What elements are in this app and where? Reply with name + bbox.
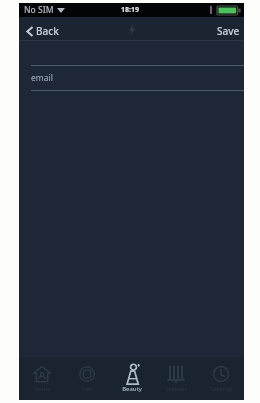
staticText: Save (217, 24, 240, 38)
button[interactable]: email (19, 66, 244, 90)
staticText: email (31, 72, 53, 84)
button[interactable]: Beauty (110, 361, 154, 397)
staticText: Back (36, 24, 59, 38)
staticText: Beauty (122, 385, 142, 393)
staticText: Statistic (165, 385, 188, 393)
button[interactable]: Back (19, 20, 67, 42)
button[interactable]: Statistic (154, 360, 198, 397)
staticText: Home (33, 385, 51, 393)
button[interactable]: Info (65, 360, 109, 397)
button[interactable]: Home (20, 360, 64, 397)
staticText: Settings (210, 385, 233, 393)
button[interactable]: Settings (199, 360, 243, 397)
staticText: No SIM (24, 4, 54, 16)
staticText: Info (81, 385, 93, 393)
staticText: 18:19 (121, 5, 139, 15)
button[interactable]: Save (209, 20, 244, 42)
